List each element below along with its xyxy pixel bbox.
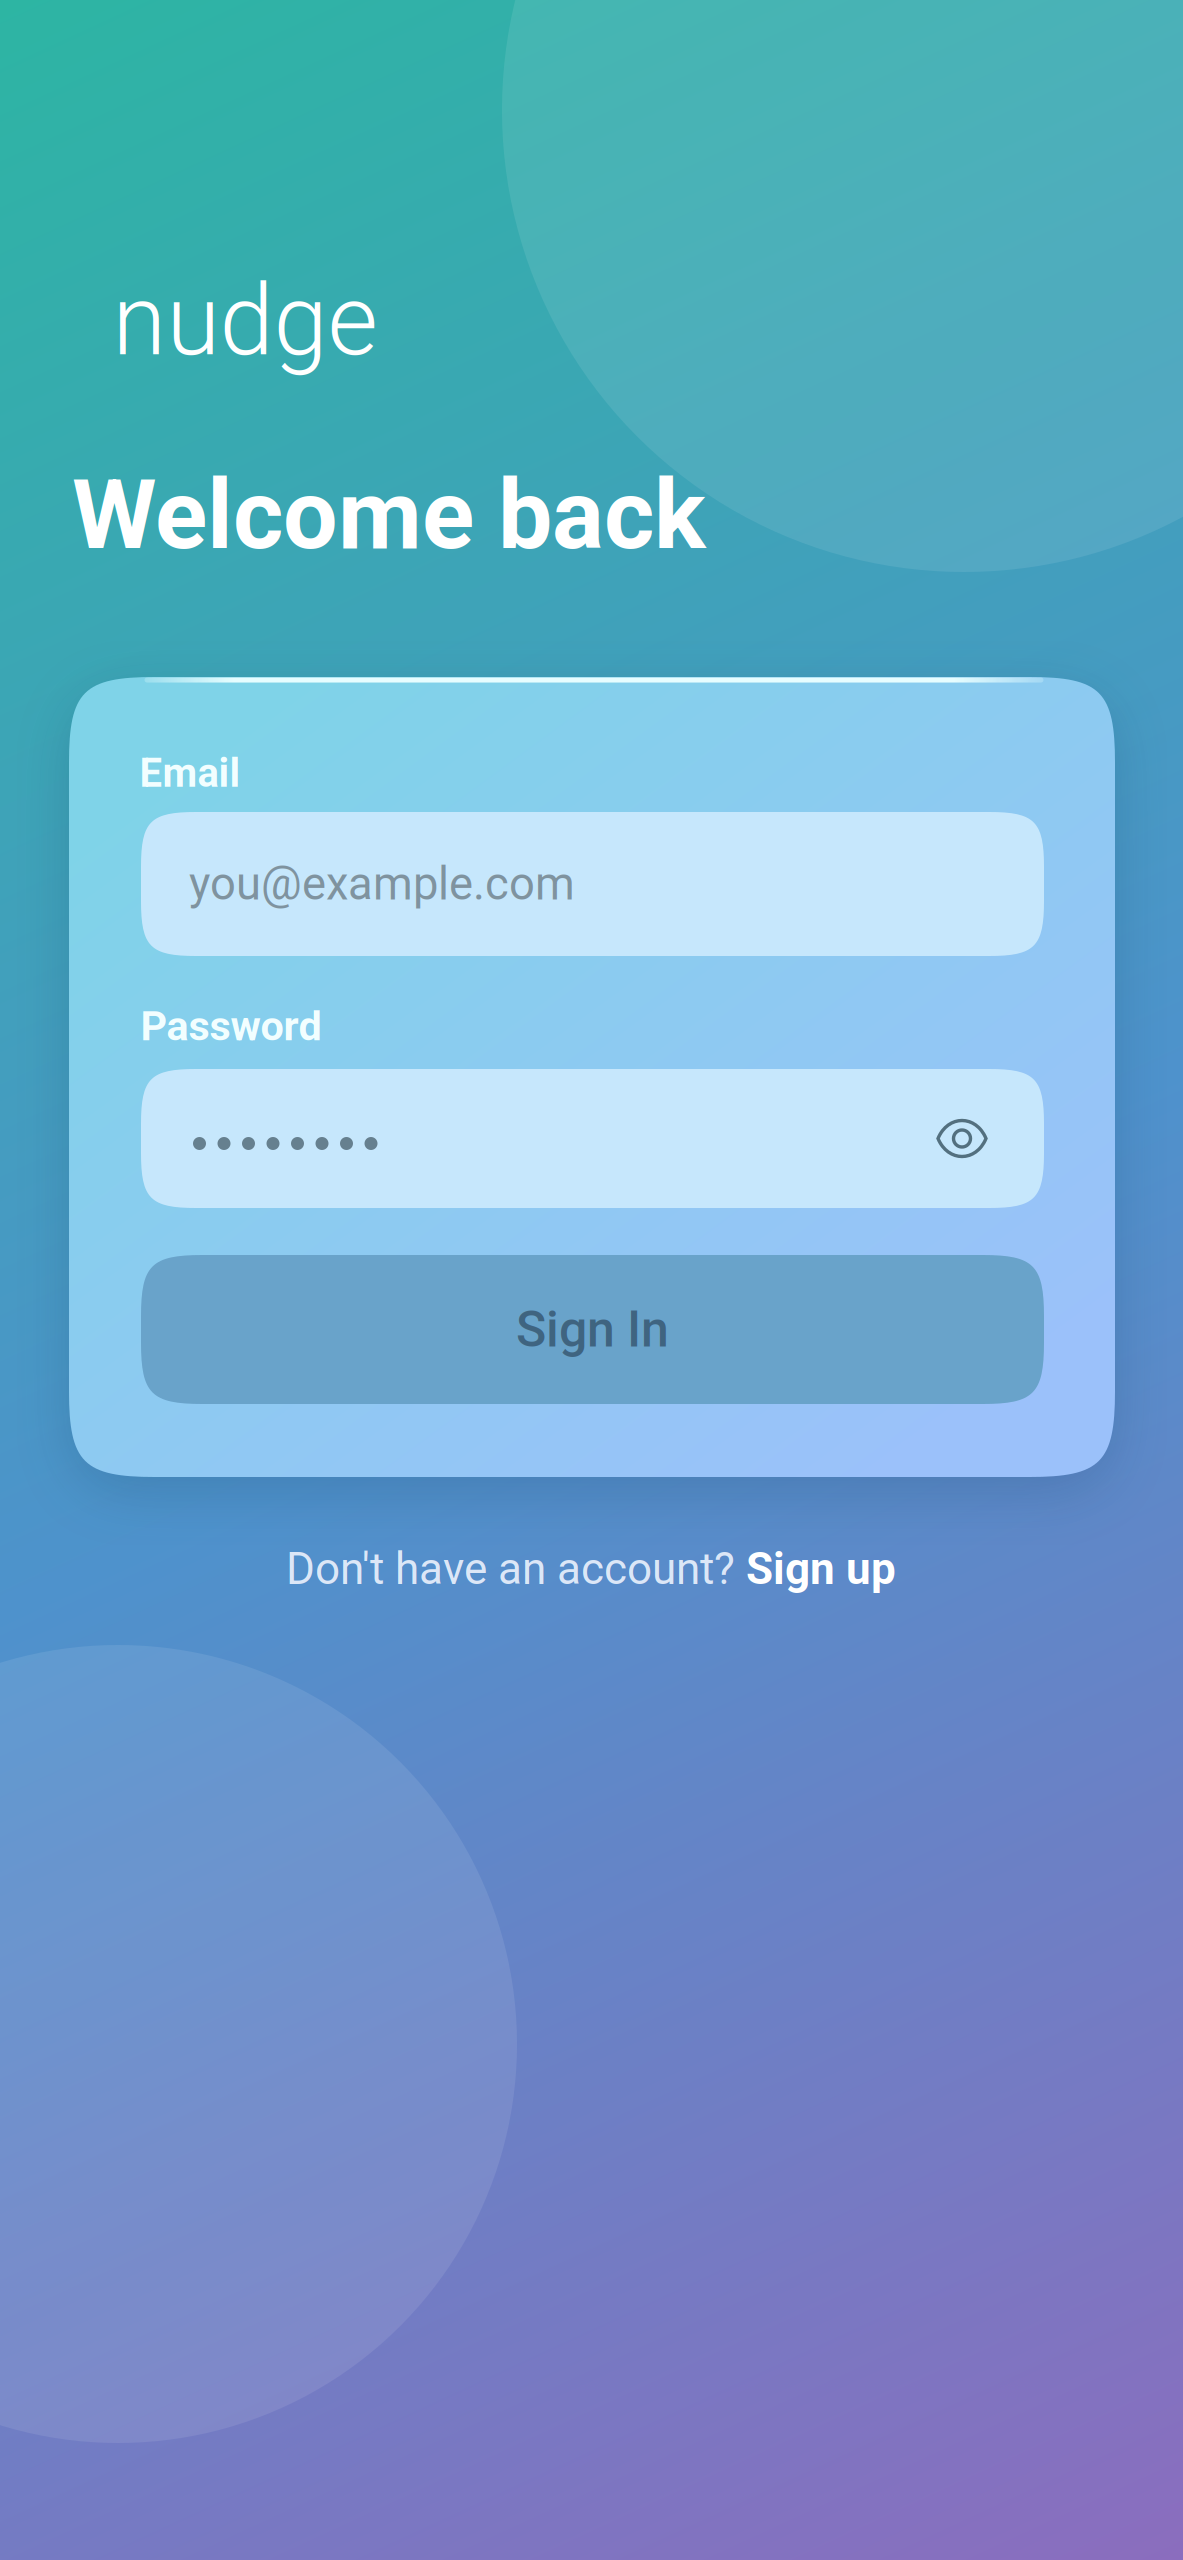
- staticText: Don't have an account?: [286, 1543, 746, 1595]
- staticText: Sign In: [516, 1300, 669, 1359]
- staticText: Welcome back: [72, 458, 706, 572]
- button[interactable]: Show password: [920, 1094, 1008, 1182]
- staticText: Sign up: [746, 1543, 896, 1595]
- staticText: nudge: [112, 264, 377, 378]
- button[interactable]: Password: [141, 1069, 1044, 1208]
- button[interactable]: Don't have an account?: [270, 1533, 912, 1605]
- button[interactable]: you@example.com: [141, 812, 1044, 956]
- staticText: Email: [139, 750, 240, 796]
- staticText: you@example.com: [189, 857, 575, 910]
- staticText: Password: [140, 1002, 321, 1050]
- button[interactable]: Sign In: [141, 1255, 1044, 1404]
